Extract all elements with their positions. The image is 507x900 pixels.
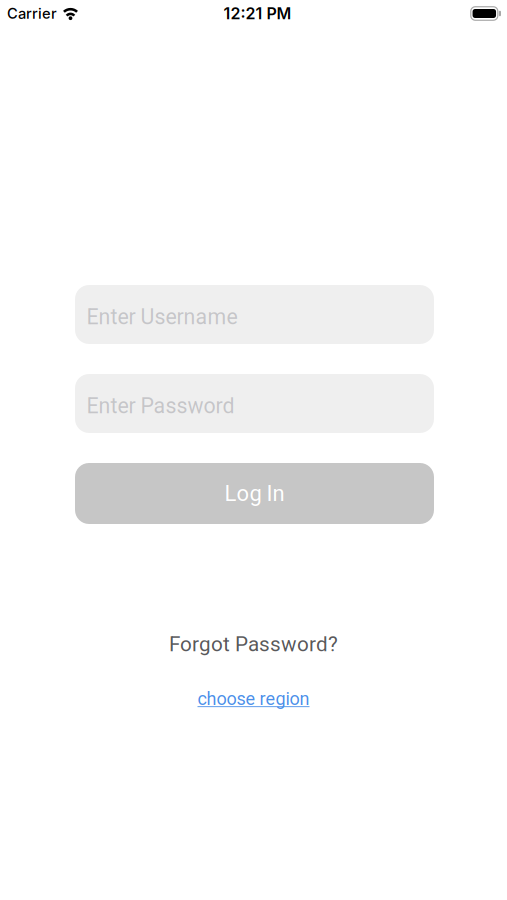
staticText: Forgot Password?	[169, 632, 338, 656]
staticText: Log In	[224, 481, 284, 506]
staticText: Enter Password	[86, 393, 234, 418]
staticText: Enter Username	[86, 304, 237, 329]
staticText: Carrier	[7, 5, 57, 22]
staticText: 12:21 PM	[223, 4, 291, 23]
button[interactable]: Enter Password	[73, 374, 434, 433]
staticText: choose region	[197, 688, 309, 709]
button[interactable]: Enter Username	[73, 285, 434, 344]
button[interactable]: Forgot Password?	[169, 632, 338, 656]
button[interactable]: choose region	[197, 688, 309, 709]
button[interactable]: Log In	[73, 463, 434, 524]
